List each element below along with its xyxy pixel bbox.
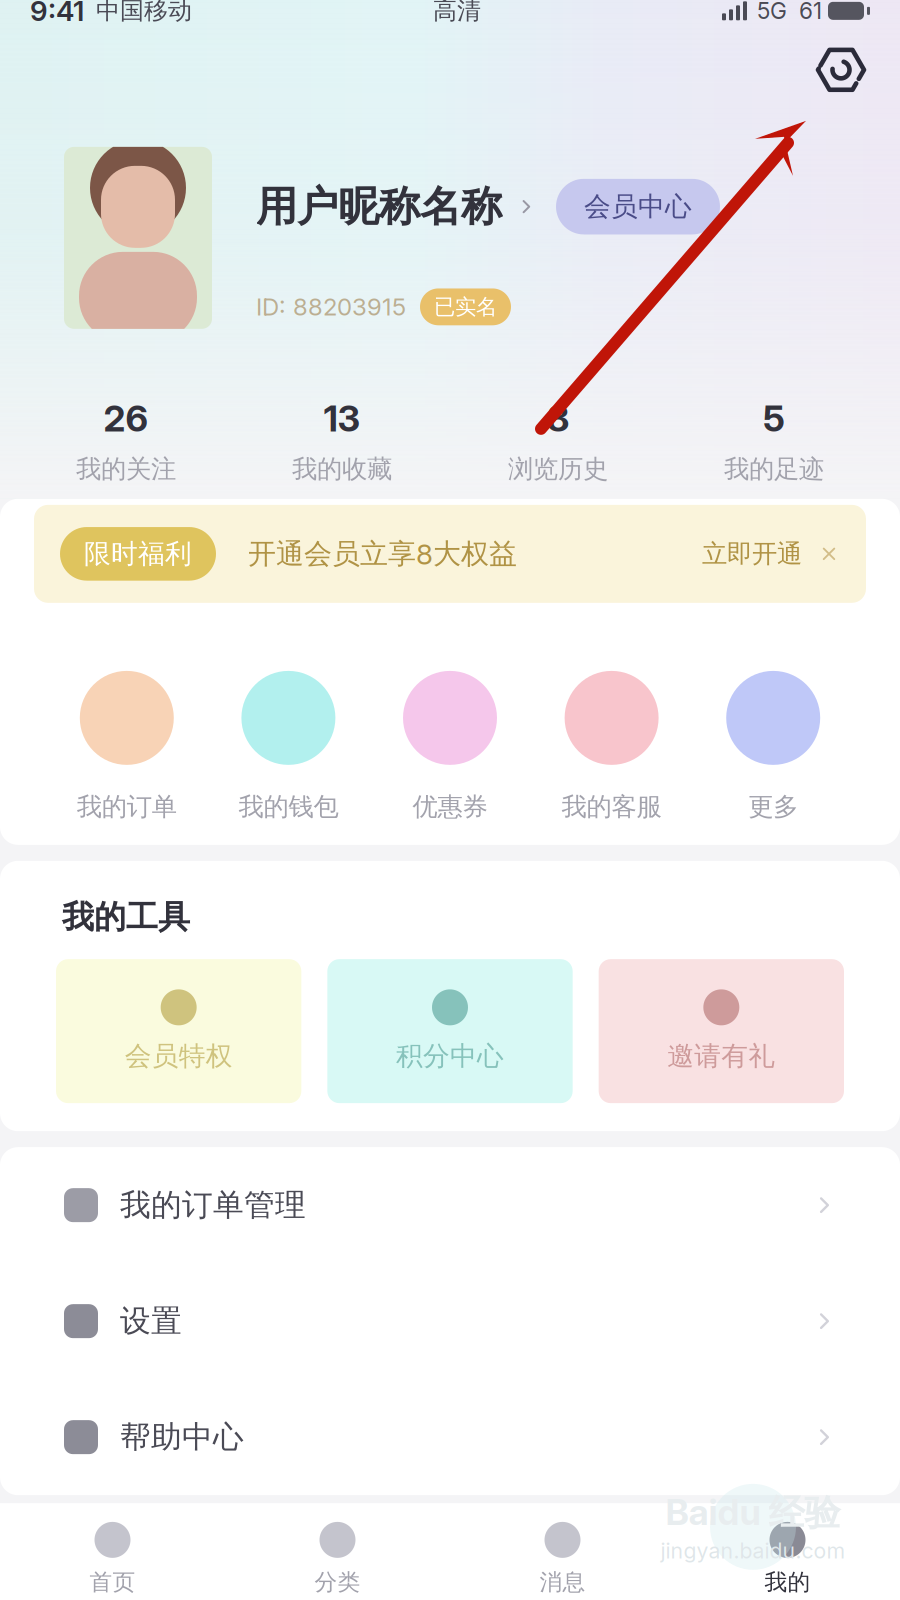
button[interactable]: 我的客服	[531, 671, 692, 823]
button[interactable]: 优惠券	[369, 671, 531, 823]
staticText: 我的订单	[77, 791, 177, 823]
button[interactable]: 设置	[34, 1263, 866, 1379]
staticText: 用户昵称名称	[256, 181, 502, 233]
staticText: 浏览历史	[508, 453, 608, 485]
staticText: 高清	[433, 0, 481, 26]
staticText: 我的客服	[562, 791, 662, 823]
staticText: 优惠券	[412, 791, 487, 823]
button[interactable]: 我的订单	[46, 671, 208, 823]
staticText: ID: 88203915	[256, 292, 406, 321]
button[interactable]: 邀请有礼	[599, 959, 844, 1103]
button[interactable]: 帮助中心	[34, 1379, 866, 1495]
staticText: 帮助中心	[120, 1418, 244, 1456]
staticText: 限时福利	[84, 537, 192, 571]
button[interactable]: 8	[450, 397, 666, 485]
staticText: 9:41	[30, 0, 84, 28]
staticText: 设置	[120, 1302, 182, 1340]
staticText: 首页	[89, 1568, 135, 1596]
staticText: 我的足迹	[724, 453, 824, 485]
button[interactable]: 26	[18, 397, 234, 485]
button[interactable]: 13	[234, 397, 450, 485]
staticText: 我的关注	[76, 453, 176, 485]
staticText: 我的工具	[62, 897, 190, 937]
staticText: 8	[547, 397, 569, 440]
staticText: 5	[763, 397, 785, 440]
button[interactable]: 更多	[692, 671, 854, 823]
staticText: 我的钱包	[238, 791, 338, 823]
button[interactable]: 限时福利	[34, 505, 866, 603]
staticText: 我的订单管理	[120, 1186, 306, 1224]
staticText: 我的收藏	[292, 453, 392, 485]
staticText: 我的	[764, 1568, 810, 1596]
staticText: 开通会员立享8大权益	[248, 536, 517, 571]
staticText: 会员中心	[584, 190, 692, 223]
button[interactable]: 我的钱包	[208, 671, 369, 823]
staticText: Baidu 经验	[665, 1490, 840, 1536]
staticText: 会员特权	[125, 1039, 233, 1073]
button[interactable]: 我的订单管理	[34, 1147, 866, 1263]
staticText: 消息	[539, 1568, 585, 1596]
staticText: jingyan.baidu.com	[660, 1538, 845, 1563]
button[interactable]: 会员中心	[556, 179, 720, 234]
button[interactable]: 分类	[225, 1522, 450, 1596]
staticText: 中国移动	[96, 0, 192, 26]
staticText: 更多	[748, 791, 798, 823]
staticText: 26	[103, 397, 148, 440]
staticText: 5G	[757, 0, 787, 24]
staticText: 已实名	[434, 293, 497, 320]
staticText: 立即开通	[702, 538, 802, 570]
button[interactable]: Settings	[808, 37, 874, 103]
staticText: 分类	[314, 1568, 360, 1596]
staticText: 积分中心	[396, 1039, 504, 1073]
staticText: 13	[323, 397, 360, 440]
button[interactable]: 消息	[450, 1522, 675, 1596]
button[interactable]: 会员特权	[56, 959, 301, 1103]
button[interactable]: 首页	[0, 1522, 225, 1596]
button[interactable]: 积分中心	[327, 959, 573, 1103]
button[interactable]: 我的	[675, 1522, 900, 1596]
staticText: 邀请有礼	[667, 1039, 775, 1073]
staticText: 61	[799, 0, 822, 24]
button[interactable]: 5	[666, 397, 882, 485]
